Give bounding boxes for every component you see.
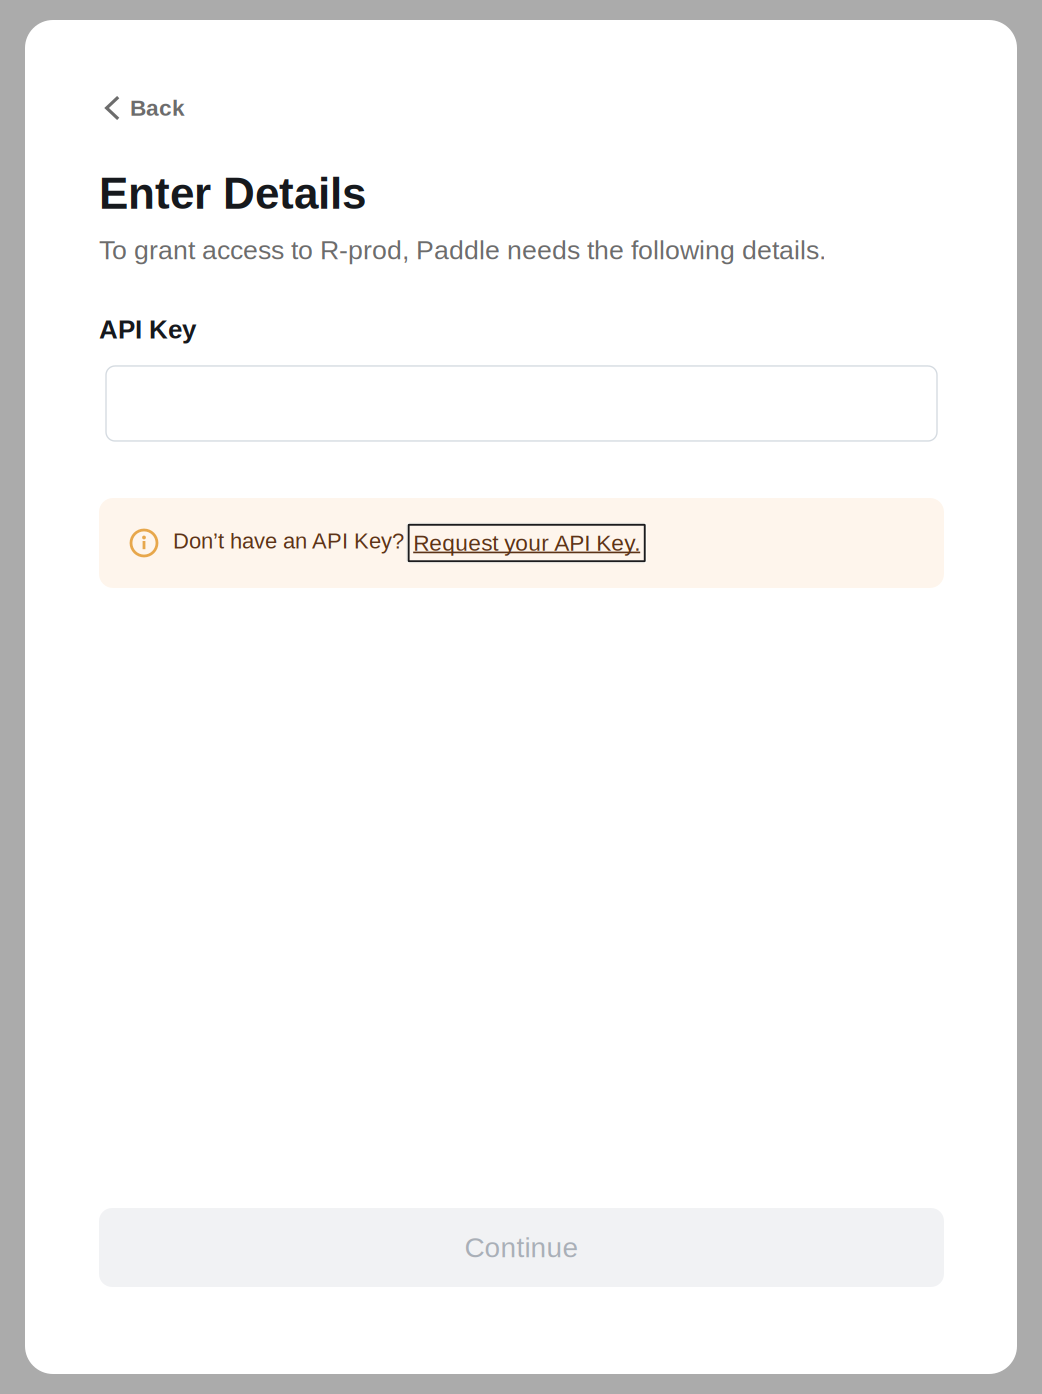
button[interactable]: Continue — [99, 1208, 944, 1287]
staticText: Continue — [464, 1232, 578, 1263]
button[interactable]: Back — [99, 92, 944, 124]
button[interactable]: API Key — [99, 366, 944, 441]
staticText: Back — [130, 95, 185, 121]
button[interactable]: Request your API Key. — [407, 523, 646, 563]
staticText: To grant access to R-prod, Paddle needs … — [99, 235, 826, 265]
staticText: Enter Details — [99, 169, 366, 218]
staticText: Request your API Key. — [413, 530, 640, 556]
staticText: Don’t have an API Key? — [173, 529, 404, 553]
staticText: API Key — [99, 315, 196, 344]
